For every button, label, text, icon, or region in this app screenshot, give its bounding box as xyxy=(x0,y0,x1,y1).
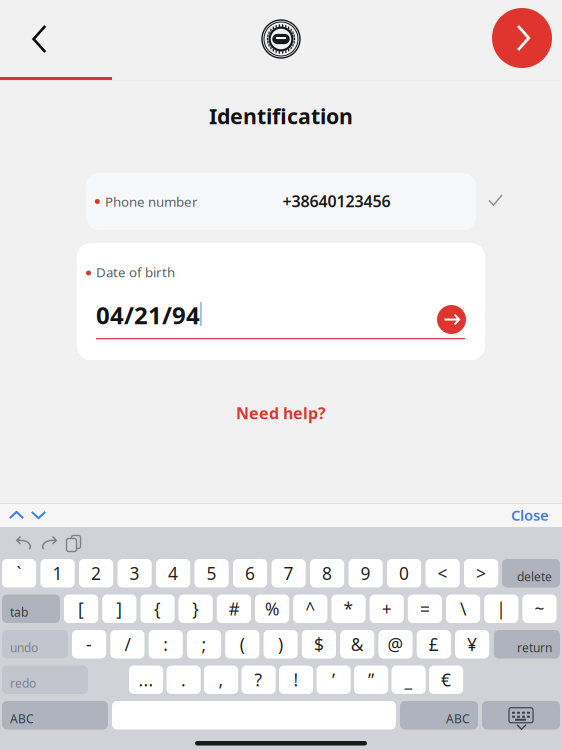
staticText: ^ xyxy=(305,597,315,620)
button[interactable]: 8 xyxy=(310,559,344,587)
staticText: ” xyxy=(368,668,374,691)
button[interactable]: Continue xyxy=(437,305,466,334)
button[interactable]: # xyxy=(217,594,251,623)
button[interactable]: Paste xyxy=(57,527,86,557)
button[interactable]: tab xyxy=(2,594,60,623)
staticText: ’ xyxy=(332,668,335,691)
button[interactable]: 7 xyxy=(271,559,306,587)
button[interactable]: ^ xyxy=(293,594,327,623)
button[interactable]: redo xyxy=(2,665,88,694)
button[interactable]: * xyxy=(331,594,366,623)
button[interactable]: 5 xyxy=(194,559,229,587)
staticText: ; xyxy=(201,633,206,656)
button[interactable]: _ xyxy=(391,665,426,694)
button[interactable]: | xyxy=(484,594,518,623)
button[interactable]: Next field xyxy=(24,503,53,527)
button[interactable]: > xyxy=(464,559,498,587)
button[interactable]: 9 xyxy=(348,559,383,587)
button[interactable]: Need help? xyxy=(201,392,361,434)
staticText: Need help? xyxy=(236,402,326,424)
staticText: ¥ xyxy=(467,633,477,656)
staticText: + xyxy=(382,597,392,620)
staticText: Identification xyxy=(209,102,353,130)
button[interactable]: return xyxy=(494,630,560,658)
button[interactable]: - xyxy=(72,630,106,658)
staticText: * xyxy=(343,597,353,620)
button[interactable]: ; xyxy=(187,630,221,658)
button[interactable]: / xyxy=(110,630,144,658)
button[interactable]: ~ xyxy=(522,594,557,623)
staticText: £ xyxy=(429,633,439,656)
staticText: delete xyxy=(517,568,552,584)
button[interactable]: 4 xyxy=(156,559,190,587)
button[interactable]: ¥ xyxy=(455,630,489,658)
button[interactable]: undo xyxy=(2,630,68,658)
staticText: ( xyxy=(240,633,245,656)
staticText: - xyxy=(86,633,92,656)
staticText: \ xyxy=(460,597,466,620)
button[interactable]: Close xyxy=(503,503,557,527)
button[interactable]: , xyxy=(204,665,238,694)
staticText: } xyxy=(192,597,199,620)
staticText: 0 xyxy=(399,562,409,585)
button[interactable]: Previous field xyxy=(2,503,31,527)
button[interactable]: delete xyxy=(502,559,560,587)
button[interactable]: { xyxy=(140,594,175,623)
button[interactable]: ) xyxy=(263,630,298,658)
staticText: @ xyxy=(387,633,403,656)
button[interactable]: < xyxy=(425,559,460,587)
staticText: ] xyxy=(116,597,122,620)
staticText: return xyxy=(517,639,552,655)
button[interactable]: ( xyxy=(225,630,259,658)
button[interactable]: & xyxy=(340,630,374,658)
button[interactable]: ] xyxy=(102,594,136,623)
button[interactable]: = xyxy=(408,594,442,623)
staticText: ! xyxy=(294,668,299,691)
staticText: Date of birth xyxy=(96,263,175,281)
button[interactable]: ABC xyxy=(2,701,108,729)
button[interactable]: + xyxy=(370,594,404,623)
button[interactable]: 0 xyxy=(387,559,421,587)
staticText: [ xyxy=(78,597,84,620)
staticText: 04/21/94 xyxy=(96,299,200,331)
staticText: 1 xyxy=(53,562,63,585)
button[interactable]: ABC xyxy=(400,701,478,729)
button[interactable]: Back xyxy=(8,8,70,70)
button[interactable]: Phone number xyxy=(86,173,476,230)
button[interactable]: : xyxy=(149,630,183,658)
button[interactable]: $ xyxy=(302,630,336,658)
button[interactable]: Next xyxy=(492,8,552,68)
button[interactable]: ` xyxy=(2,559,36,587)
button[interactable]: ? xyxy=(241,665,276,694)
button[interactable] xyxy=(112,701,396,729)
button[interactable]: € xyxy=(429,665,463,694)
staticText: undo xyxy=(10,639,38,655)
button[interactable]: \ xyxy=(446,594,480,623)
button[interactable]: % xyxy=(255,594,289,623)
button[interactable]: £ xyxy=(417,630,451,658)
button[interactable]: ’ xyxy=(316,665,351,694)
button[interactable]: 6 xyxy=(233,559,267,587)
staticText: 9 xyxy=(361,562,371,585)
button[interactable]: [ xyxy=(64,594,98,623)
staticText: ABC xyxy=(10,710,34,726)
staticText: ... xyxy=(139,668,154,691)
button[interactable]: ... xyxy=(129,665,163,694)
button[interactable]: 2 xyxy=(79,559,113,587)
staticText: € xyxy=(441,668,451,691)
staticText: Phone number xyxy=(105,193,198,210)
button[interactable]: ! xyxy=(279,665,313,694)
staticText: # xyxy=(228,597,239,620)
button[interactable]: Redo xyxy=(32,528,65,558)
button[interactable]: . xyxy=(166,665,201,694)
button[interactable]: ” xyxy=(354,665,388,694)
button[interactable]: Phone number verified xyxy=(480,186,511,214)
button[interactable]: @ xyxy=(378,630,413,658)
button[interactable]: 1 xyxy=(40,559,75,587)
button[interactable]: Undo xyxy=(8,528,41,558)
staticText: redo xyxy=(10,675,36,691)
button[interactable]: Dismiss keyboard xyxy=(482,701,560,729)
staticText: ABC xyxy=(446,710,470,726)
button[interactable]: 3 xyxy=(117,559,152,587)
button[interactable]: } xyxy=(179,594,213,623)
